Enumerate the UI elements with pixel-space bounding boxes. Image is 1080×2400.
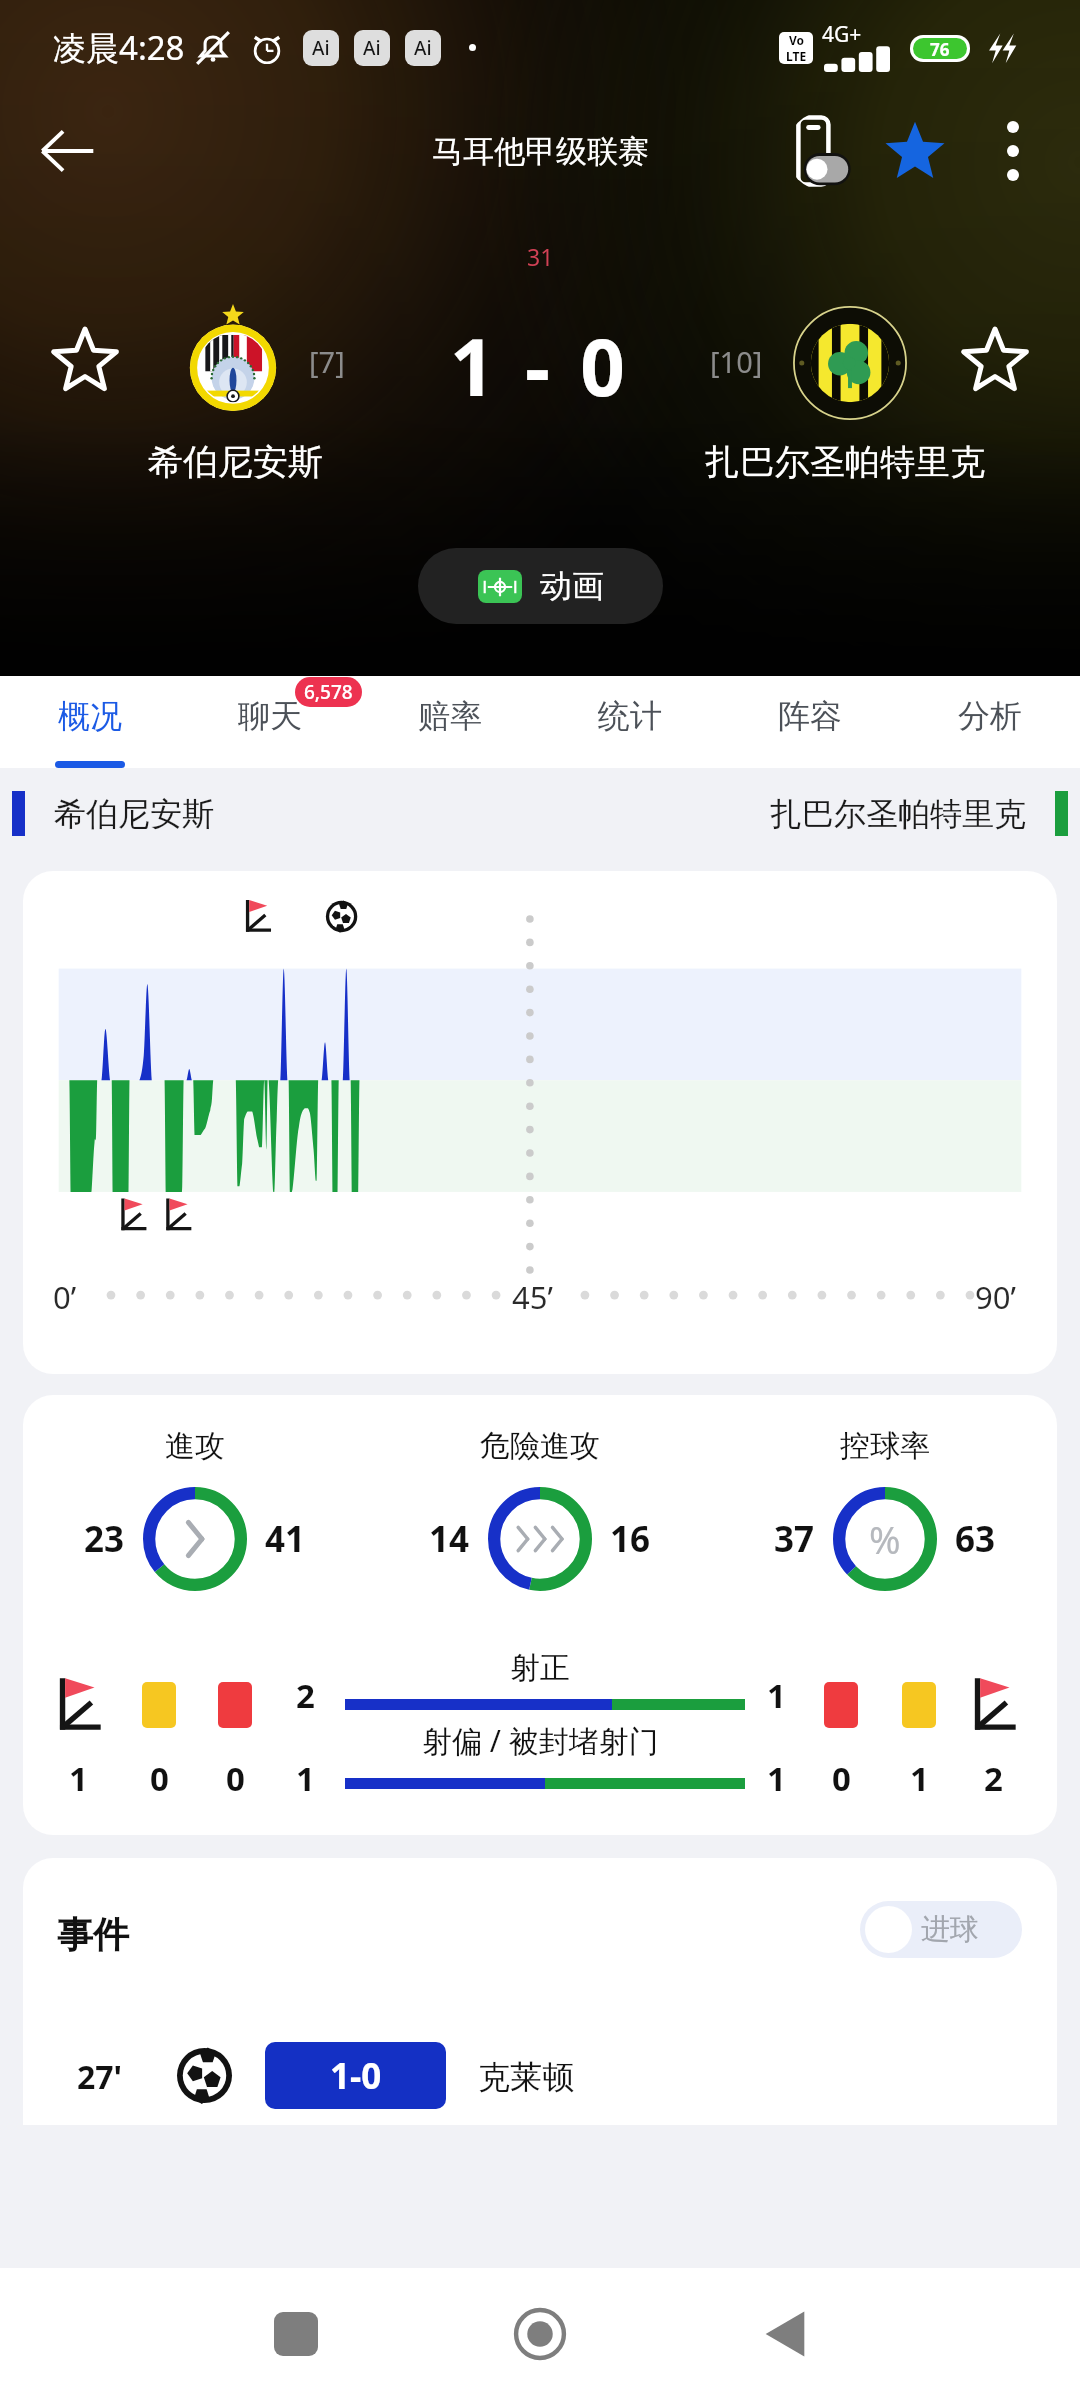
staticText: 凌晨4:28 bbox=[53, 25, 185, 70]
staticText: 赔率 bbox=[418, 696, 482, 736]
button[interactable]: More options bbox=[973, 111, 1053, 191]
staticText: 90’ bbox=[975, 1276, 1016, 1318]
staticText: 分析 bbox=[958, 696, 1022, 736]
staticText: 1-0 bbox=[330, 2052, 382, 2100]
button[interactable]: Favorite away team bbox=[954, 319, 1036, 401]
staticText: 扎巴尔圣帕特里克 bbox=[705, 440, 985, 484]
staticText: 6,578 bbox=[304, 679, 353, 705]
staticText: 37 bbox=[774, 1515, 815, 1563]
staticText: 射正 bbox=[510, 1649, 570, 1687]
staticText: 阵容 bbox=[778, 696, 842, 736]
staticText: 41 bbox=[265, 1515, 306, 1563]
button[interactable]: Favorite home team bbox=[44, 319, 126, 401]
staticText: 聊天 bbox=[238, 696, 302, 736]
staticText: 16 bbox=[610, 1515, 651, 1563]
staticText: Vo bbox=[789, 32, 805, 48]
staticText: 0 bbox=[832, 1756, 851, 1801]
staticText: 统计 bbox=[598, 696, 662, 736]
button[interactable]: 阵容 bbox=[720, 676, 900, 768]
staticText: 希伯尼安斯 bbox=[148, 440, 323, 484]
button[interactable]: Recent apps bbox=[216, 2268, 376, 2400]
staticText: 事件 bbox=[57, 1912, 129, 1957]
staticText: 希伯尼安斯 bbox=[54, 794, 214, 834]
staticText: 1 bbox=[767, 1756, 786, 1801]
button[interactable]: Cast to device bbox=[786, 111, 866, 191]
staticText: 扎巴尔圣帕特里克 bbox=[770, 794, 1026, 834]
staticText: 2 bbox=[296, 1673, 315, 1718]
staticText: 23 bbox=[84, 1515, 125, 1563]
button[interactable]: 赔率 bbox=[360, 676, 540, 768]
button[interactable]: 概况 bbox=[0, 676, 180, 768]
staticText: % bbox=[869, 1513, 901, 1565]
staticText: 76 bbox=[930, 38, 950, 59]
staticText: 概况 bbox=[58, 696, 122, 736]
staticText: [7] bbox=[309, 342, 345, 381]
staticText: 27' bbox=[77, 2055, 123, 2099]
staticText: 1 bbox=[296, 1756, 315, 1801]
button[interactable]: 分析 bbox=[900, 676, 1080, 768]
button[interactable]: Home bbox=[460, 2268, 620, 2400]
staticText: 1 - 0 bbox=[450, 313, 630, 419]
staticText: 克莱顿 bbox=[478, 2057, 574, 2097]
staticText: 射偏 / 被封堵射门 bbox=[422, 1720, 659, 1761]
staticText: 4G+ bbox=[822, 20, 862, 49]
staticText: 危險進攻 bbox=[480, 1427, 600, 1465]
staticText: 进球 bbox=[921, 1911, 979, 1948]
button[interactable]: 动画 bbox=[418, 548, 663, 624]
button[interactable]: 聊天 bbox=[180, 676, 360, 768]
staticText: 控球率 bbox=[840, 1427, 930, 1465]
staticText: 14 bbox=[429, 1515, 470, 1563]
staticText: 1 bbox=[767, 1673, 786, 1718]
staticText: 進攻 bbox=[165, 1427, 225, 1465]
staticText: 1 bbox=[910, 1756, 929, 1801]
button[interactable]: Back bbox=[705, 2268, 865, 2400]
staticText: LTE bbox=[786, 48, 807, 64]
button[interactable]: Favorite bbox=[873, 109, 957, 193]
staticText: Ai bbox=[312, 35, 330, 61]
staticText: 1 bbox=[69, 1756, 88, 1801]
staticText: Ai bbox=[363, 35, 381, 61]
staticText: 0 bbox=[226, 1756, 245, 1801]
staticText: 0 bbox=[150, 1756, 169, 1801]
staticText: 31 bbox=[527, 241, 554, 272]
staticText: 马耳他甲级联赛 bbox=[432, 132, 649, 171]
staticText: 63 bbox=[955, 1515, 996, 1563]
staticText: 2 bbox=[984, 1756, 1003, 1801]
button[interactable]: Back bbox=[24, 108, 110, 194]
button[interactable]: 进球 bbox=[860, 1901, 1022, 1958]
staticText: Ai bbox=[414, 35, 432, 61]
staticText: 动画 bbox=[540, 566, 604, 606]
staticText: 0’ bbox=[53, 1276, 77, 1318]
button[interactable]: 27' bbox=[23, 2025, 1057, 2125]
staticText: [10] bbox=[710, 342, 763, 381]
staticText: 45’ bbox=[512, 1276, 553, 1318]
button[interactable]: 统计 bbox=[540, 676, 720, 768]
